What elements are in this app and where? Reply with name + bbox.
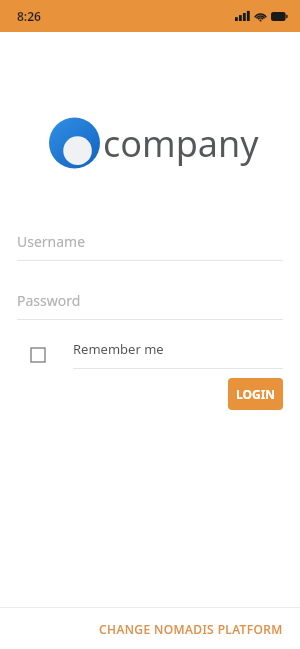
button[interactable]: Remember me <box>0 340 300 369</box>
button[interactable]: Password <box>0 291 300 320</box>
button[interactable]: LOGIN <box>228 378 283 410</box>
staticText: CHANGE NOMADIS PLATFORM <box>99 621 283 637</box>
staticText: company <box>103 119 259 168</box>
button[interactable]: Username <box>0 232 300 261</box>
other: Company logo <box>49 114 100 172</box>
button[interactable]: CHANGE NOMADIS PLATFORM <box>82 611 300 647</box>
staticText: LOGIN <box>236 386 276 402</box>
staticText: Password <box>17 291 81 310</box>
staticText: Username <box>17 232 86 251</box>
staticText: Remember me <box>73 340 164 358</box>
staticText: 8:26 <box>17 8 41 24</box>
